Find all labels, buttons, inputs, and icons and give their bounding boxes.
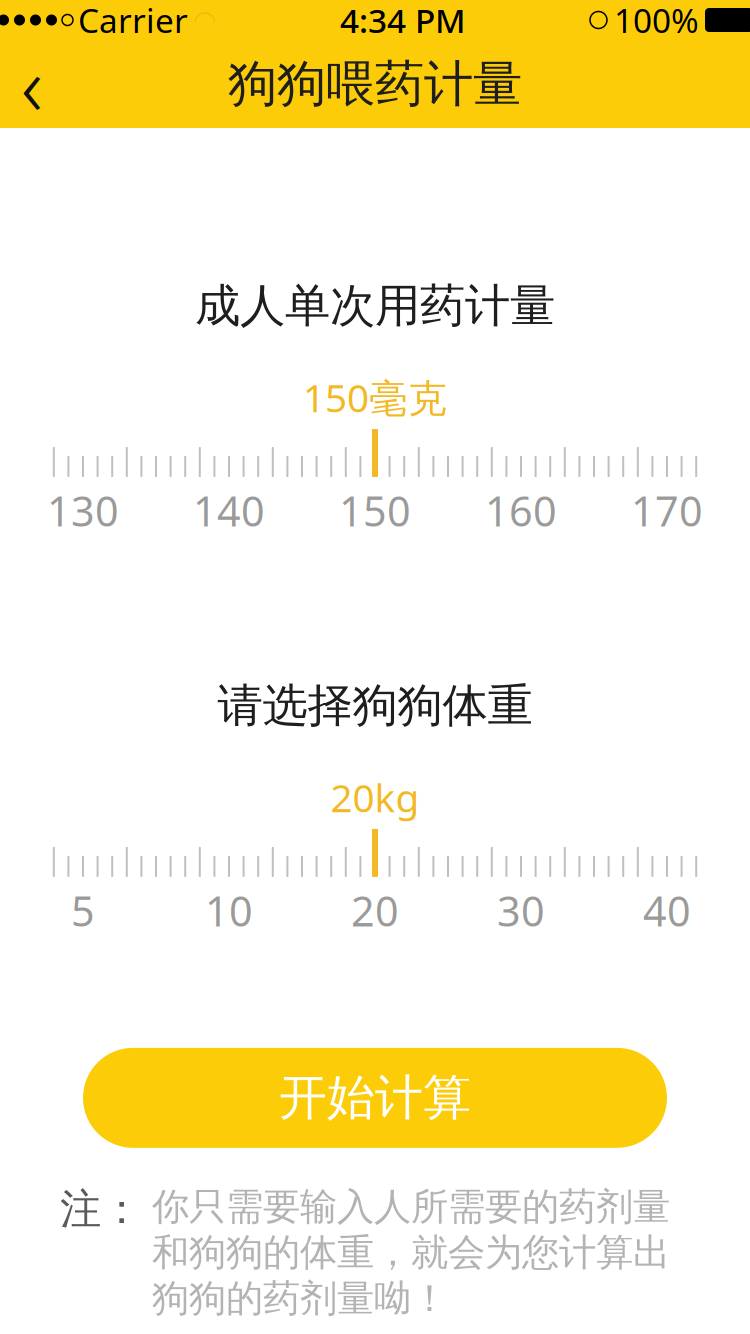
staticText: 140 <box>193 483 265 538</box>
staticText: 100% <box>614 0 699 42</box>
staticText: 150 <box>339 483 411 538</box>
staticText: 160 <box>485 483 557 538</box>
button[interactable]: 开始计算 <box>83 1048 667 1148</box>
staticText: 4:34 PM <box>340 0 466 42</box>
button[interactable]: Back <box>0 48 68 120</box>
staticText: 130 <box>47 483 119 538</box>
staticText: ‹ <box>21 29 43 139</box>
staticText: 150毫克 <box>303 372 447 423</box>
staticText: 5 <box>71 883 95 938</box>
staticText: 30 <box>497 883 545 938</box>
staticText: 20 <box>351 883 399 938</box>
staticText: 170 <box>631 483 703 538</box>
staticText: 成人单次用药计量 <box>195 278 555 334</box>
staticText: 请选择狗狗体重 <box>217 678 532 734</box>
staticText: Carrier <box>78 0 188 42</box>
staticText: 40 <box>643 883 691 938</box>
staticText: 20kg <box>330 772 419 823</box>
staticText: 开始计算 <box>279 1068 471 1127</box>
staticText: 狗狗喂药计量 <box>228 54 522 114</box>
staticText: 10 <box>205 883 253 938</box>
staticText: ◠ <box>193 5 216 35</box>
staticText: 注： <box>60 1184 142 1235</box>
staticText: 你只需要输入人所需要的药剂量和狗狗的体重，就会为您计算出狗狗的药剂量呦！ <box>152 1184 670 1321</box>
